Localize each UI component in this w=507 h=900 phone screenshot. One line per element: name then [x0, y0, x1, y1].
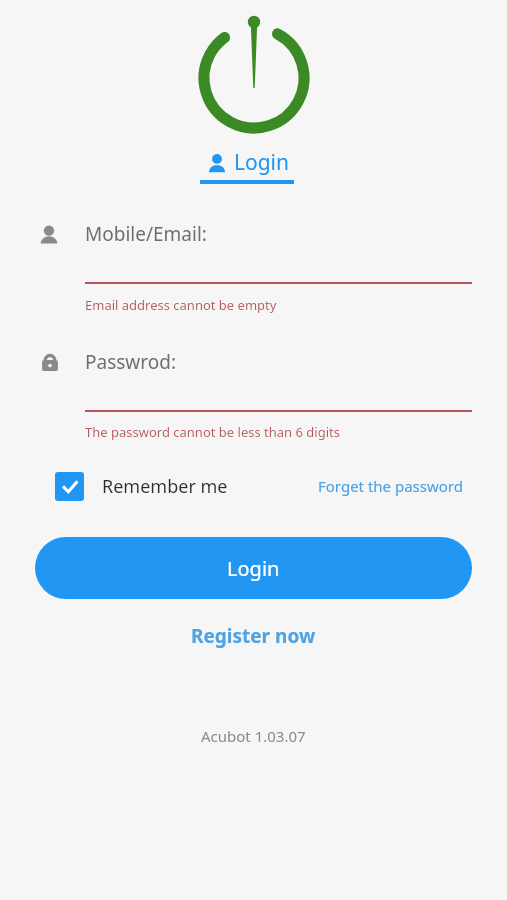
staticText: Register now [191, 623, 316, 649]
staticText: Email address cannot be empty [85, 296, 277, 314]
staticText: Acubot 1.03.07 [201, 726, 306, 746]
staticText: Remember me [102, 474, 228, 499]
staticText: Login [234, 148, 290, 177]
staticText: Mobile/Email: [85, 221, 207, 247]
button[interactable]: Remember me [55, 472, 228, 501]
button[interactable]: Forget the password [318, 476, 463, 496]
button[interactable]: Login [200, 148, 294, 184]
staticText: Passwrod: [85, 349, 177, 375]
button[interactable]: Login [35, 537, 472, 599]
button[interactable]: Register now [0, 620, 507, 652]
staticText: The password cannot be less than 6 digit… [85, 423, 340, 441]
staticText: Login [227, 555, 280, 582]
staticText: Forget the password [318, 476, 463, 496]
